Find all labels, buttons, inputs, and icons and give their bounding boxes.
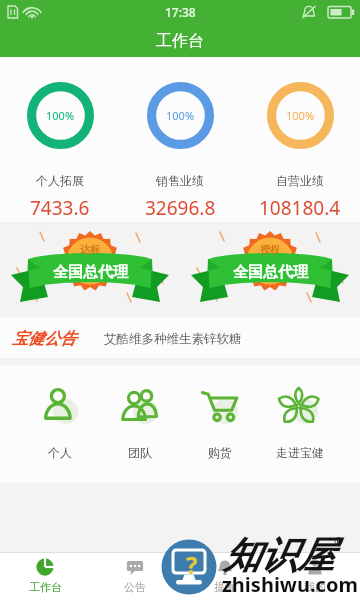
staticText: 100% xyxy=(46,108,75,123)
other: Team xyxy=(119,385,161,427)
button[interactable]: 达标 xyxy=(0,228,180,308)
button[interactable]: About Baojian xyxy=(260,365,340,460)
staticText: 知识屋 xyxy=(223,532,334,579)
staticText: 销售业绩 xyxy=(156,173,204,188)
staticText: 购货 xyxy=(208,445,232,460)
staticText: 团队 xyxy=(128,445,152,460)
staticText: 32696.8 xyxy=(145,195,216,221)
staticText: 108180.4 xyxy=(259,195,341,221)
button[interactable]: Purchase xyxy=(180,365,260,460)
staticText: 全国总代理 xyxy=(53,263,128,282)
staticText: 走进宝健 xyxy=(276,445,324,460)
staticText: 达标 xyxy=(80,243,100,256)
staticText: 授权 xyxy=(260,243,280,256)
button[interactable]: 100% xyxy=(120,82,240,221)
button[interactable]: Team xyxy=(100,365,180,460)
staticText: 17:38 xyxy=(165,4,196,20)
button[interactable]: 我的 xyxy=(270,553,360,594)
other: Personal xyxy=(39,385,81,427)
staticText: 全国总代理 xyxy=(233,263,308,282)
button[interactable]: 授权 xyxy=(180,228,360,308)
staticText: 提醒 xyxy=(214,580,236,594)
button[interactable]: 工作台 xyxy=(0,553,90,594)
staticText: 100% xyxy=(286,108,315,123)
staticText: 个人 xyxy=(48,445,72,460)
staticText: 7433.6 xyxy=(30,195,90,221)
staticText: 我的 xyxy=(304,580,326,594)
staticText: 工作台 xyxy=(29,580,62,594)
other: About Baojian xyxy=(279,385,321,427)
staticText: 公告 xyxy=(124,580,146,594)
button[interactable]: 宝健公告 xyxy=(0,317,360,358)
staticText: 个人拓展 xyxy=(36,173,84,188)
staticText: ? xyxy=(186,548,198,581)
staticText: 100% xyxy=(166,108,195,123)
staticText: zhishiwu.com xyxy=(222,571,358,598)
button[interactable]: 100% xyxy=(240,82,360,221)
button[interactable]: 提醒 xyxy=(180,553,270,594)
staticText: 艾酷维多种维生素锌软糖 xyxy=(104,331,242,347)
button[interactable]: Personal xyxy=(20,365,100,460)
button[interactable]: 100% xyxy=(0,82,120,221)
staticText: 工作台 xyxy=(156,31,204,51)
staticText: 宝健公告 xyxy=(12,329,76,349)
staticText: ® xyxy=(334,533,344,548)
button[interactable]: 公告 xyxy=(90,553,180,594)
other: Purchase xyxy=(199,385,241,427)
staticText: 自营业绩 xyxy=(276,173,324,188)
